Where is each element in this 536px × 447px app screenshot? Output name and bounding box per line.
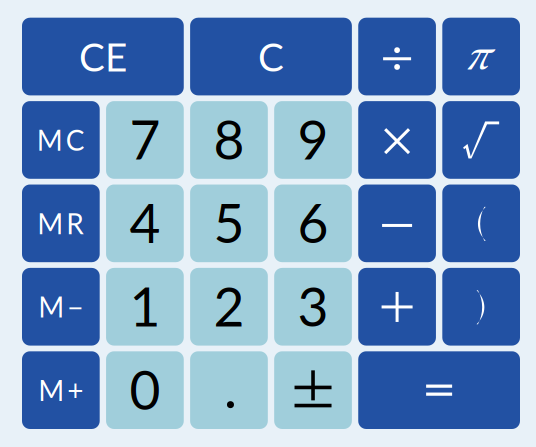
- button[interactable]: 3: [274, 268, 352, 346]
- staticText: 9: [297, 107, 328, 171]
- button[interactable]: Plus: [358, 268, 436, 346]
- button[interactable]: Square root: [442, 101, 520, 179]
- button[interactable]: MR: [22, 184, 100, 262]
- staticText: 0: [129, 357, 160, 421]
- button[interactable]: 9: [274, 101, 352, 179]
- staticText: 5: [213, 190, 244, 254]
- button[interactable]: M−: [22, 268, 100, 346]
- staticText: MR: [37, 207, 84, 240]
- button[interactable]: 1: [106, 268, 184, 346]
- staticText: MC: [37, 123, 85, 157]
- staticText: 𝜋: [466, 39, 491, 79]
- button[interactable]: Divide: [358, 18, 436, 95]
- button[interactable]: Plus minus: [274, 351, 352, 429]
- button[interactable]: 𝜋: [442, 18, 520, 95]
- staticText: M+: [38, 373, 83, 407]
- button[interactable]: 0: [106, 351, 184, 429]
- button[interactable]: Multiply: [358, 101, 436, 179]
- button[interactable]: CE: [22, 18, 184, 95]
- button[interactable]: Equals: [358, 351, 520, 429]
- button[interactable]: 4: [106, 184, 184, 262]
- staticText: M−: [38, 290, 83, 324]
- button[interactable]: 8: [190, 101, 268, 179]
- button[interactable]: Right parenthesis: [442, 268, 520, 346]
- staticText: C: [258, 33, 284, 80]
- button[interactable]: MC: [22, 101, 100, 179]
- button[interactable]: Decimal point: [190, 351, 268, 429]
- staticText: 3: [297, 274, 328, 338]
- button[interactable]: 5: [190, 184, 268, 262]
- button[interactable]: Minus: [358, 184, 436, 262]
- button[interactable]: Left parenthesis: [442, 184, 520, 262]
- staticText: 4: [129, 190, 160, 254]
- button[interactable]: 7: [106, 101, 184, 179]
- staticText: CE: [79, 33, 127, 80]
- staticText: 1: [129, 274, 160, 338]
- button[interactable]: 2: [190, 268, 268, 346]
- staticText: 6: [297, 190, 328, 254]
- button[interactable]: C: [190, 18, 352, 95]
- button[interactable]: 6: [274, 184, 352, 262]
- staticText: 2: [213, 274, 244, 338]
- staticText: 7: [129, 107, 160, 171]
- button[interactable]: M+: [22, 351, 100, 429]
- staticText: 8: [213, 107, 244, 171]
